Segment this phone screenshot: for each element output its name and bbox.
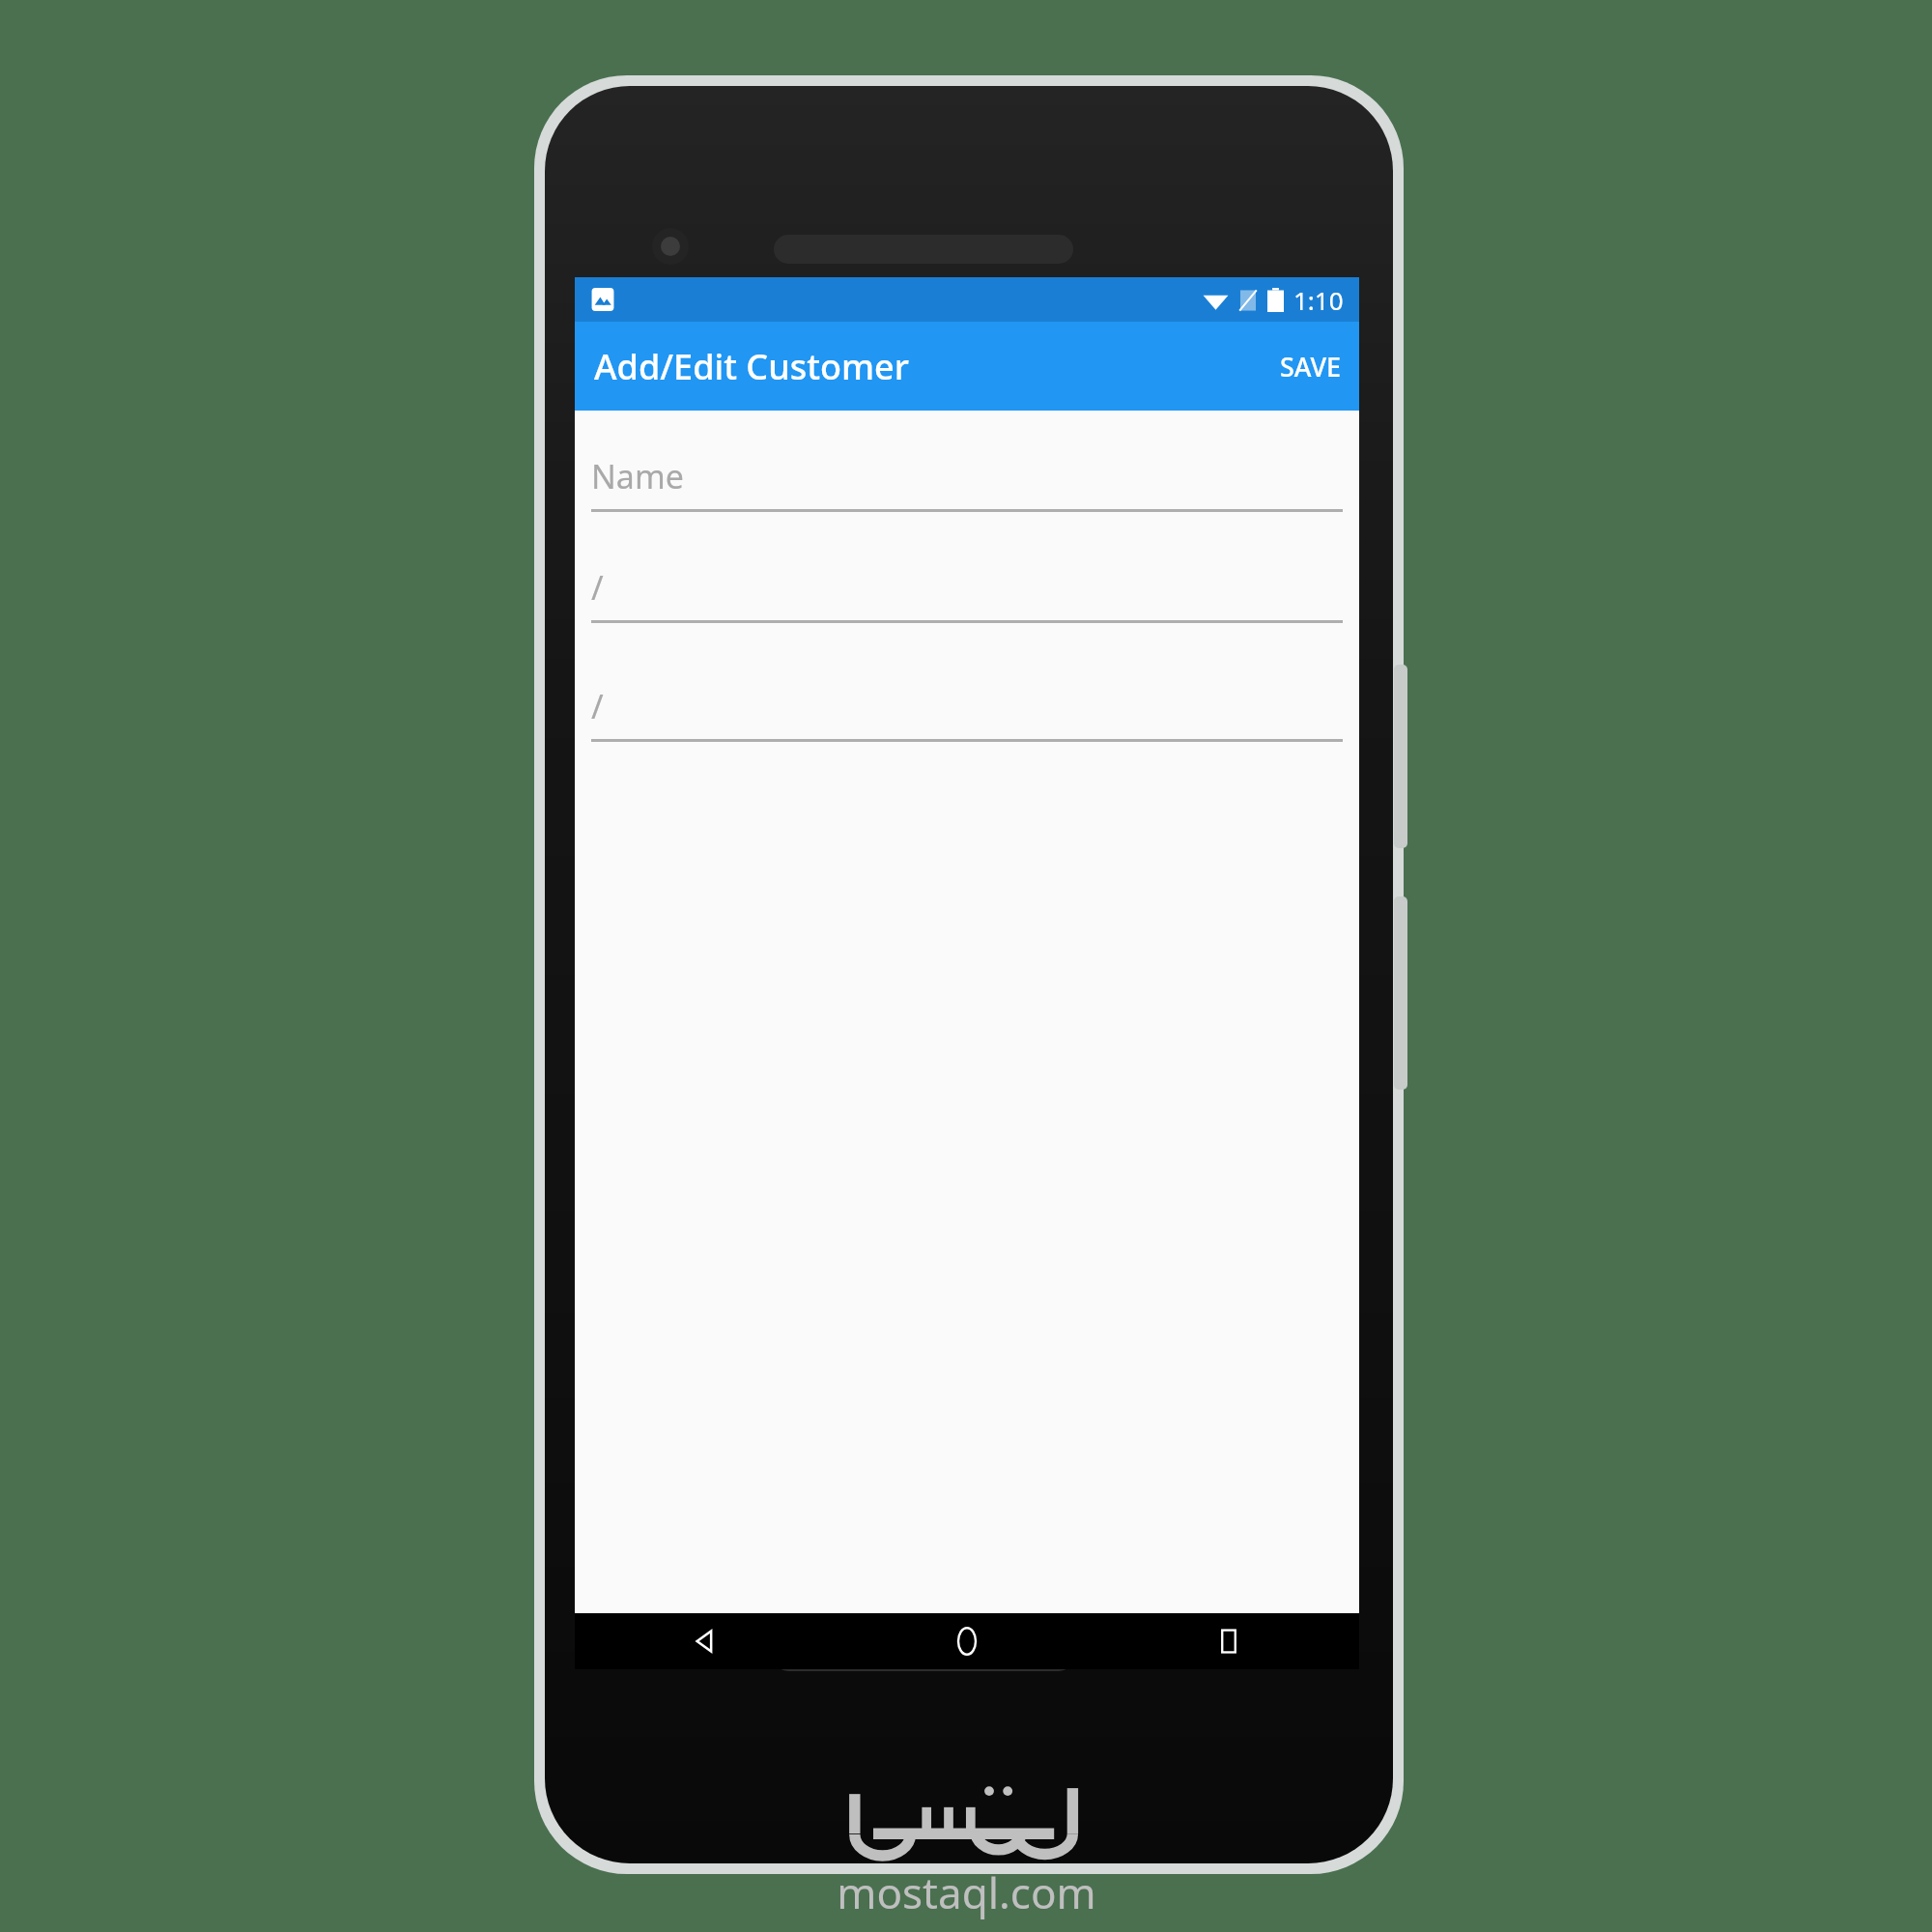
staticText: mostaql.com — [837, 1863, 1096, 1921]
button[interactable]: Back — [575, 1613, 836, 1669]
staticText: 1:10 — [1293, 283, 1344, 317]
staticText: / — [591, 565, 604, 610]
button[interactable]: Home — [836, 1613, 1097, 1669]
staticText: Add/Edit Customer — [594, 343, 910, 390]
button[interactable]: Name — [591, 451, 1343, 512]
button[interactable]: / — [591, 681, 1343, 742]
button[interactable]: SAVE — [1263, 331, 1359, 402]
button[interactable]: Recent apps — [1097, 1613, 1359, 1669]
staticText: Name — [591, 454, 684, 498]
staticText: / — [591, 684, 604, 728]
staticText: SAVE — [1280, 349, 1342, 384]
button[interactable]: / — [591, 562, 1343, 623]
